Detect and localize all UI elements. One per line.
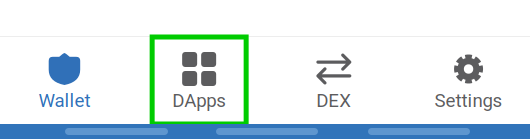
staticText: Settings [434,90,502,111]
staticText: DApps [172,90,226,111]
staticText: Wallet [38,90,90,111]
button[interactable]: DApps [132,37,266,124]
staticText: DEX [316,90,351,111]
button[interactable]: Settings [401,37,530,124]
button[interactable]: Wallet [0,37,132,124]
button[interactable]: DEX [266,37,401,124]
